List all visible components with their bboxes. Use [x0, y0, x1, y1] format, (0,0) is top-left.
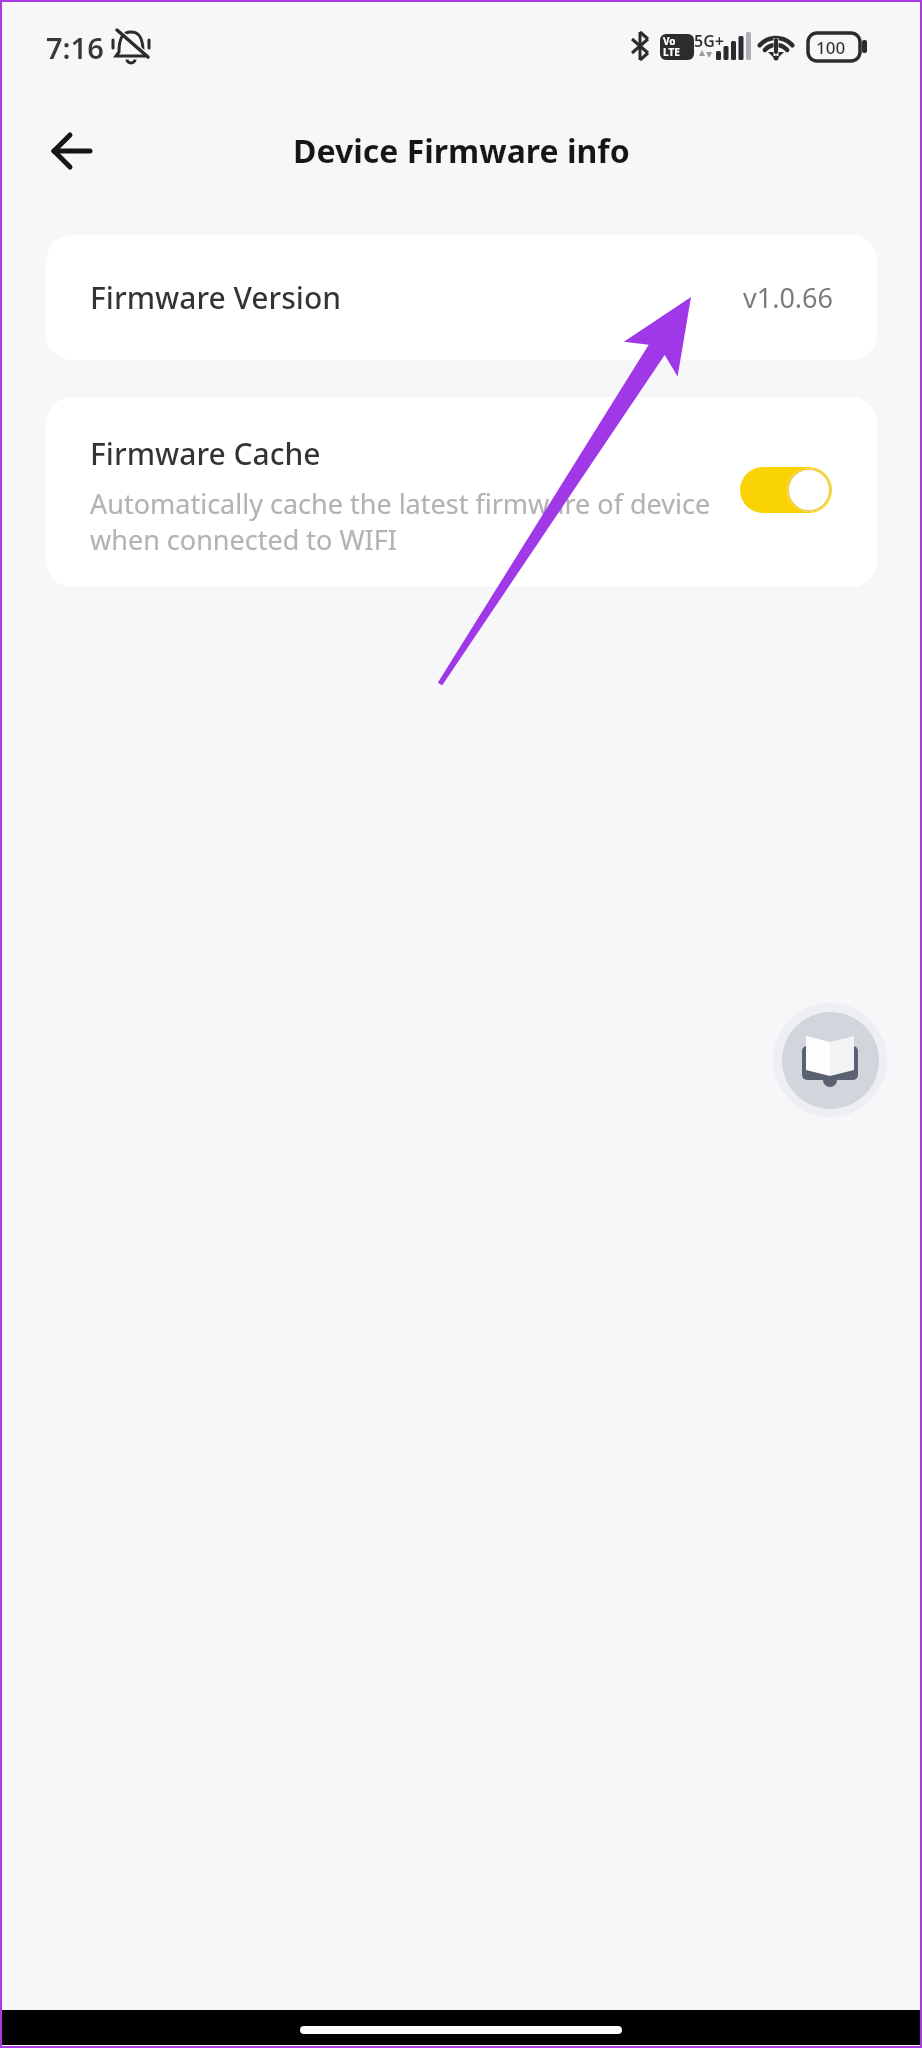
- staticText: 5G+: [694, 30, 724, 52]
- staticText: Firmware Version: [90, 277, 342, 318]
- staticText: 7:16: [46, 28, 104, 67]
- button[interactable]: [773, 1003, 887, 1117]
- staticText: Vo LTE: [663, 34, 680, 59]
- staticText: 100: [816, 36, 846, 59]
- staticText: v1.0.66: [743, 279, 833, 316]
- staticText: Firmware Cache: [90, 433, 321, 474]
- button[interactable]: [44, 125, 100, 177]
- button[interactable]: Firmware Cache: [46, 397, 877, 587]
- button[interactable]: Firmware Version: [46, 235, 877, 360]
- button[interactable]: [740, 467, 832, 513]
- staticText: Device Firmware info: [293, 129, 630, 173]
- staticText: Automatically cache the latest firmware …: [90, 485, 711, 558]
